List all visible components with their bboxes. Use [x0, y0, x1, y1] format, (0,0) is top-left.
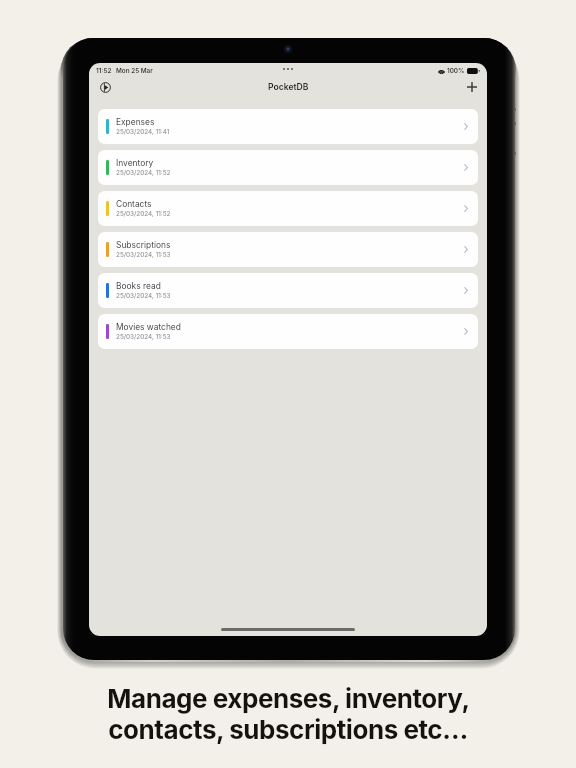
button[interactable]: Inventory [98, 150, 478, 185]
button[interactable]: Add [462, 77, 482, 97]
staticText: 25/03/2024, 11:52 [116, 210, 171, 218]
button[interactable]: Books read [98, 273, 478, 308]
button[interactable]: Toggle sidebar [95, 77, 115, 97]
staticText: Movies watched [116, 322, 181, 332]
button[interactable]: Movies watched [98, 314, 478, 349]
staticText: contacts, subscriptions etc… [108, 714, 468, 745]
staticText: Books read [116, 281, 161, 291]
staticText: PocketDB [268, 82, 309, 92]
button[interactable]: Subscriptions [98, 232, 478, 267]
button[interactable]: Expenses [98, 109, 478, 144]
staticText: Manage expenses, inventory, [107, 683, 470, 714]
staticText: 25/03/2024, 11:52 [116, 169, 171, 177]
staticText: 25/03/2024, 11:41 [116, 128, 170, 136]
staticText: 11:52 [96, 67, 112, 75]
staticText: 25/03/2024, 11:53 [116, 251, 171, 259]
staticText: 25/03/2024, 11:53 [116, 333, 171, 341]
button[interactable]: Contacts [98, 191, 478, 226]
staticText: Subscriptions [116, 240, 171, 250]
staticText: Contacts [116, 199, 152, 209]
staticText: Expenses [116, 117, 155, 127]
staticText: Inventory [116, 158, 154, 168]
staticText: 25/03/2024, 11:53 [116, 292, 171, 300]
staticText: Mon 25 Mar [116, 67, 153, 75]
staticText: 100% [447, 67, 465, 75]
